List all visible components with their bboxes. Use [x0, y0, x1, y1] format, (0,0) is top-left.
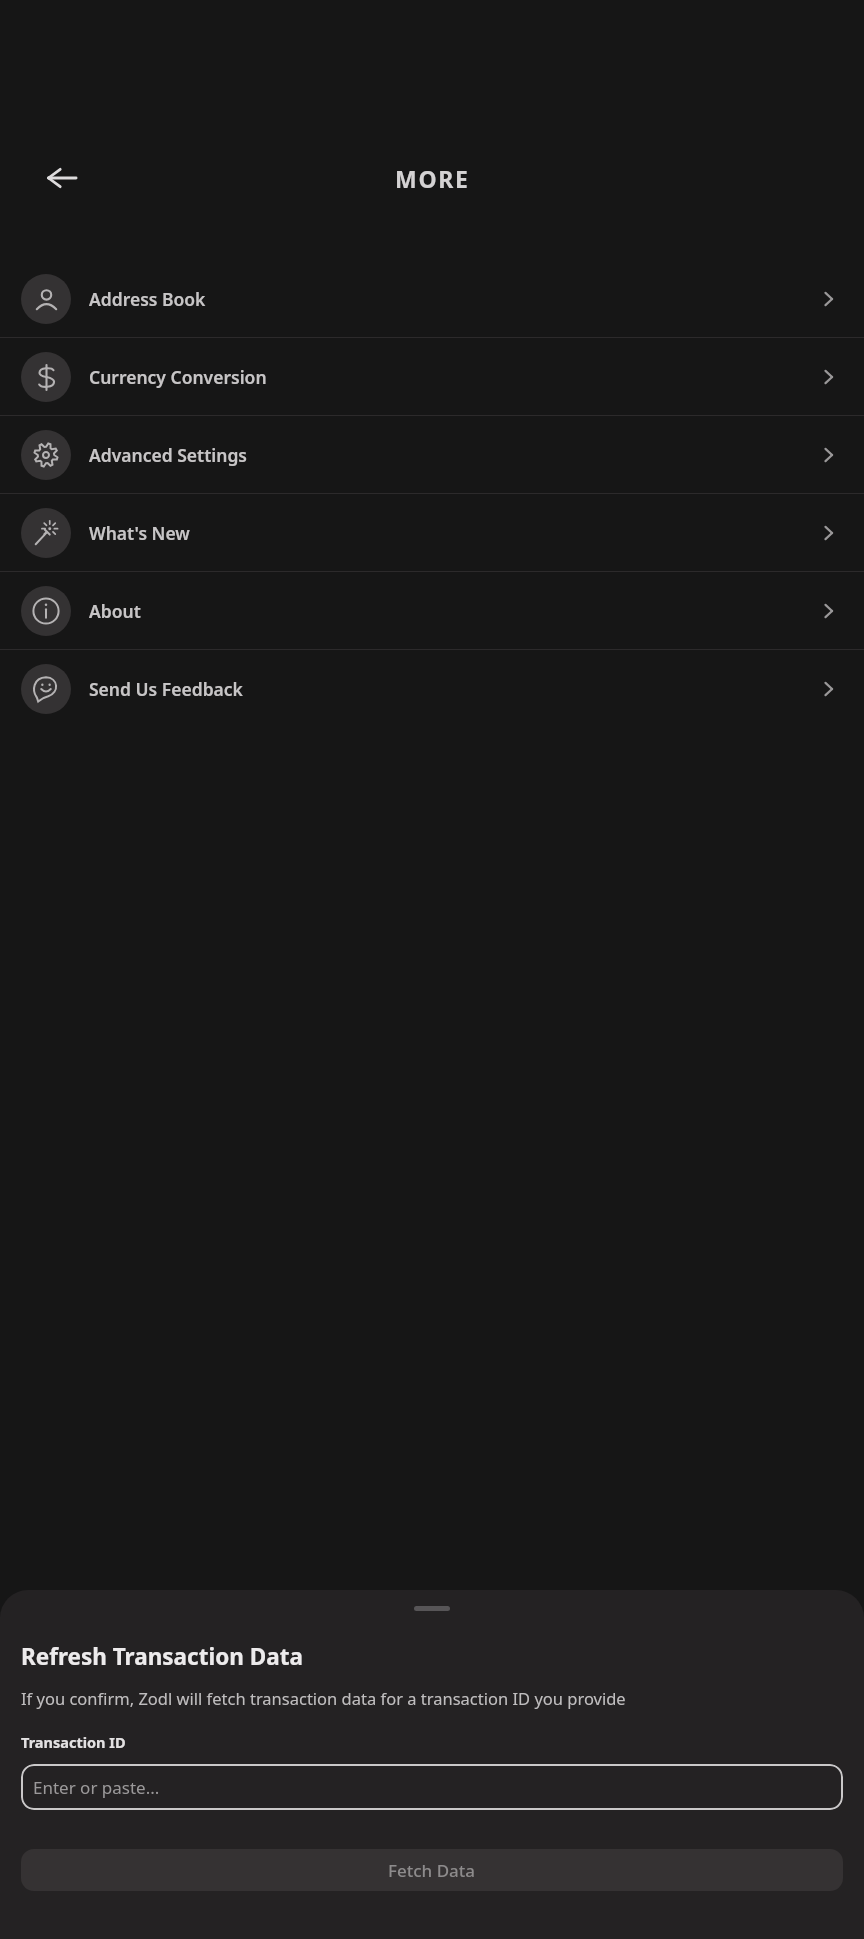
staticText: Currency Conversion — [89, 365, 267, 389]
staticText: Enter or paste... — [33, 1776, 160, 1799]
staticText: Advanced Settings — [89, 443, 247, 467]
button[interactable]: Currency Conversion — [0, 338, 864, 415]
button[interactable]: Back — [34, 150, 90, 206]
button[interactable]: Fetch Data — [21, 1849, 843, 1891]
button[interactable]: About — [0, 572, 864, 649]
staticText: About — [89, 599, 141, 623]
staticText: Transaction ID — [21, 1732, 126, 1752]
button[interactable]: Address Book — [0, 260, 864, 337]
staticText: If you confirm, Zodl will fetch transact… — [21, 1687, 626, 1709]
staticText: MORE — [395, 163, 470, 194]
button[interactable]: What's New — [0, 494, 864, 571]
staticText: What's New — [89, 521, 190, 545]
staticText: Send Us Feedback — [89, 677, 243, 701]
staticText: Address Book — [89, 287, 206, 311]
button[interactable]: Enter or paste... — [21, 1764, 843, 1810]
button[interactable]: Send Us Feedback — [0, 650, 864, 727]
button[interactable]: Advanced Settings — [0, 416, 864, 493]
staticText: Fetch Data — [388, 1859, 476, 1882]
staticText: Refresh Transaction Data — [21, 1641, 303, 1672]
